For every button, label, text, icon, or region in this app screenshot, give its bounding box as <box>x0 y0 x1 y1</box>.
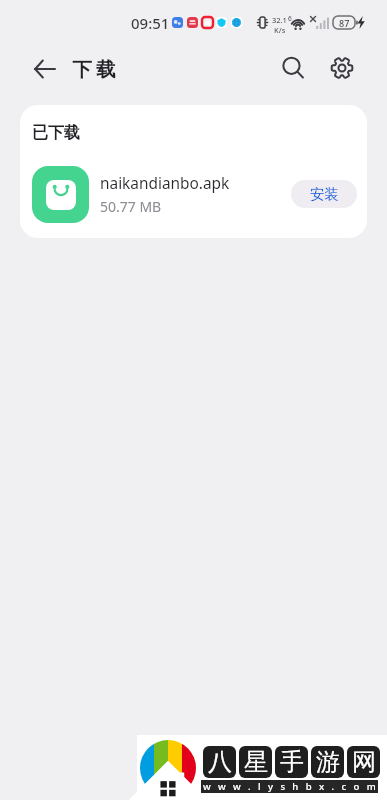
staticText: 手 <box>280 747 304 777</box>
staticText: 已下载 <box>32 123 80 143</box>
button[interactable]: naikandianbo.apk <box>32 159 357 229</box>
staticText: K/s <box>274 25 286 35</box>
button[interactable]: 安装 <box>291 180 357 208</box>
staticText: w w w . l y s h b x . c o m <box>203 780 379 793</box>
staticText: 安装 <box>310 185 339 203</box>
button[interactable]: Settings <box>324 50 360 86</box>
staticText: 09:51 <box>131 13 170 33</box>
staticText: 6 <box>288 14 292 23</box>
staticText: 87 <box>339 17 350 29</box>
staticText: 下载 <box>70 57 118 82</box>
staticText: 游 <box>316 747 340 777</box>
staticText: naikandianbo.apk <box>100 173 230 194</box>
button[interactable]: Search <box>275 50 311 86</box>
staticText: 网 <box>352 747 376 777</box>
staticText: 50.77 MB <box>100 197 162 216</box>
staticText: 星 <box>244 747 268 777</box>
button[interactable]: Back <box>27 52 61 86</box>
staticText: 八 <box>208 747 232 777</box>
staticText: 32.1 <box>272 15 287 25</box>
